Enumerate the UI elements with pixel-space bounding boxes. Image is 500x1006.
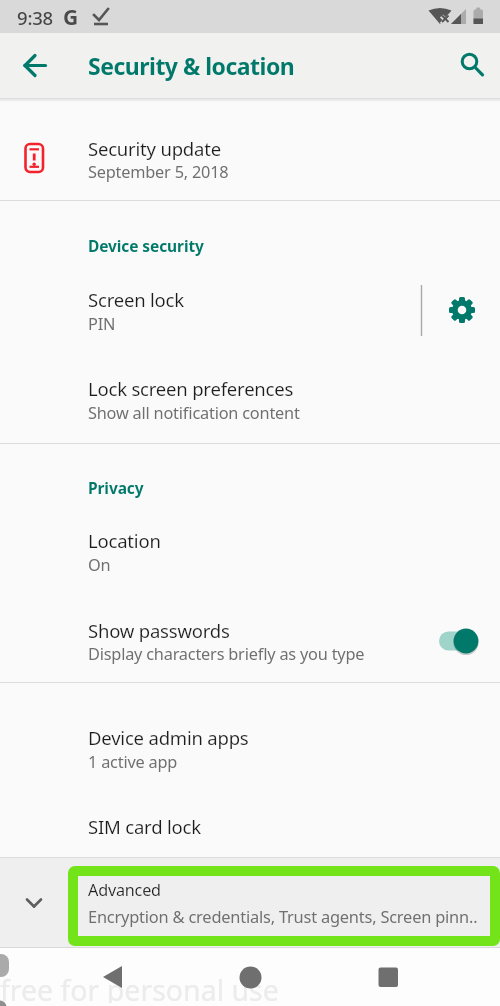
staticText: Lock screen preferences — [88, 376, 294, 401]
button[interactable] — [0, 596, 500, 682]
button[interactable] — [437, 285, 489, 337]
button[interactable] — [13, 43, 58, 88]
staticText: G — [63, 3, 79, 32]
staticText: 9:38 — [17, 5, 53, 30]
button[interactable] — [0, 706, 500, 792]
button[interactable] — [362, 953, 417, 1003]
staticText: 1 active app — [88, 751, 178, 773]
staticText: PIN — [88, 313, 116, 335]
staticText: Security update — [88, 136, 221, 161]
staticText: Advanced — [88, 879, 161, 901]
staticText: Screen lock — [88, 287, 184, 312]
staticText: Display characters briefly as you type — [88, 643, 365, 665]
staticText: Encryption & credentials, Trust agents, … — [88, 905, 478, 927]
button[interactable] — [0, 262, 420, 353]
staticText: free for personal use — [0, 971, 279, 1003]
button[interactable] — [223, 953, 278, 1003]
button[interactable] — [0, 119, 500, 200]
staticText: On — [88, 554, 111, 576]
staticText: Security & location — [88, 50, 295, 81]
button[interactable] — [447, 40, 492, 85]
button[interactable] — [0, 795, 500, 857]
staticText: Show all notification content — [88, 402, 300, 424]
staticText: September 5, 2018 — [88, 161, 229, 183]
button[interactable] — [0, 505, 500, 595]
button[interactable] — [85, 953, 140, 1003]
staticText: Privacy — [88, 477, 144, 498]
button[interactable] — [0, 353, 500, 443]
button[interactable] — [0, 858, 500, 948]
staticText: Device admin apps — [88, 725, 249, 750]
staticText: Device security — [88, 235, 204, 256]
staticText: SIM card lock — [88, 814, 201, 839]
staticText: Location — [88, 528, 161, 553]
staticText: Show passwords — [88, 618, 230, 643]
